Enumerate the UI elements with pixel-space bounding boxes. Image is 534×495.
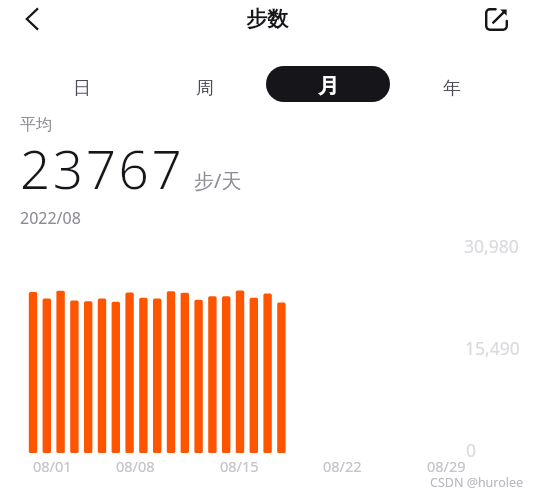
staticText: 2022/08 (20, 207, 81, 229)
staticText: 0 (466, 438, 477, 462)
staticText: 08/01 (33, 456, 72, 476)
staticText: 周 (196, 77, 214, 100)
staticText: 步数 (246, 6, 288, 32)
staticText: 08/29 (427, 456, 466, 476)
staticText: CSDN @hurolee (430, 474, 524, 491)
staticText: 月 (318, 73, 339, 99)
button[interactable]: 月 (266, 66, 390, 102)
staticText: 日 (73, 77, 91, 100)
button[interactable]: 周 (143, 66, 266, 102)
staticText: 08/15 (220, 456, 259, 476)
staticText: 30,980 (464, 234, 519, 258)
staticText: 年 (443, 77, 461, 100)
button[interactable]: Share (476, 0, 516, 39)
button[interactable]: 年 (390, 66, 514, 102)
staticText: 08/08 (116, 456, 155, 476)
button[interactable]: 日 (20, 66, 143, 102)
staticText: 08/22 (323, 456, 362, 476)
staticText: 平均 (20, 115, 52, 135)
staticText: 步/天 (194, 167, 242, 194)
button[interactable]: Back (12, 0, 52, 39)
staticText: 23767 (20, 132, 185, 204)
staticText: 15,490 (465, 336, 520, 360)
